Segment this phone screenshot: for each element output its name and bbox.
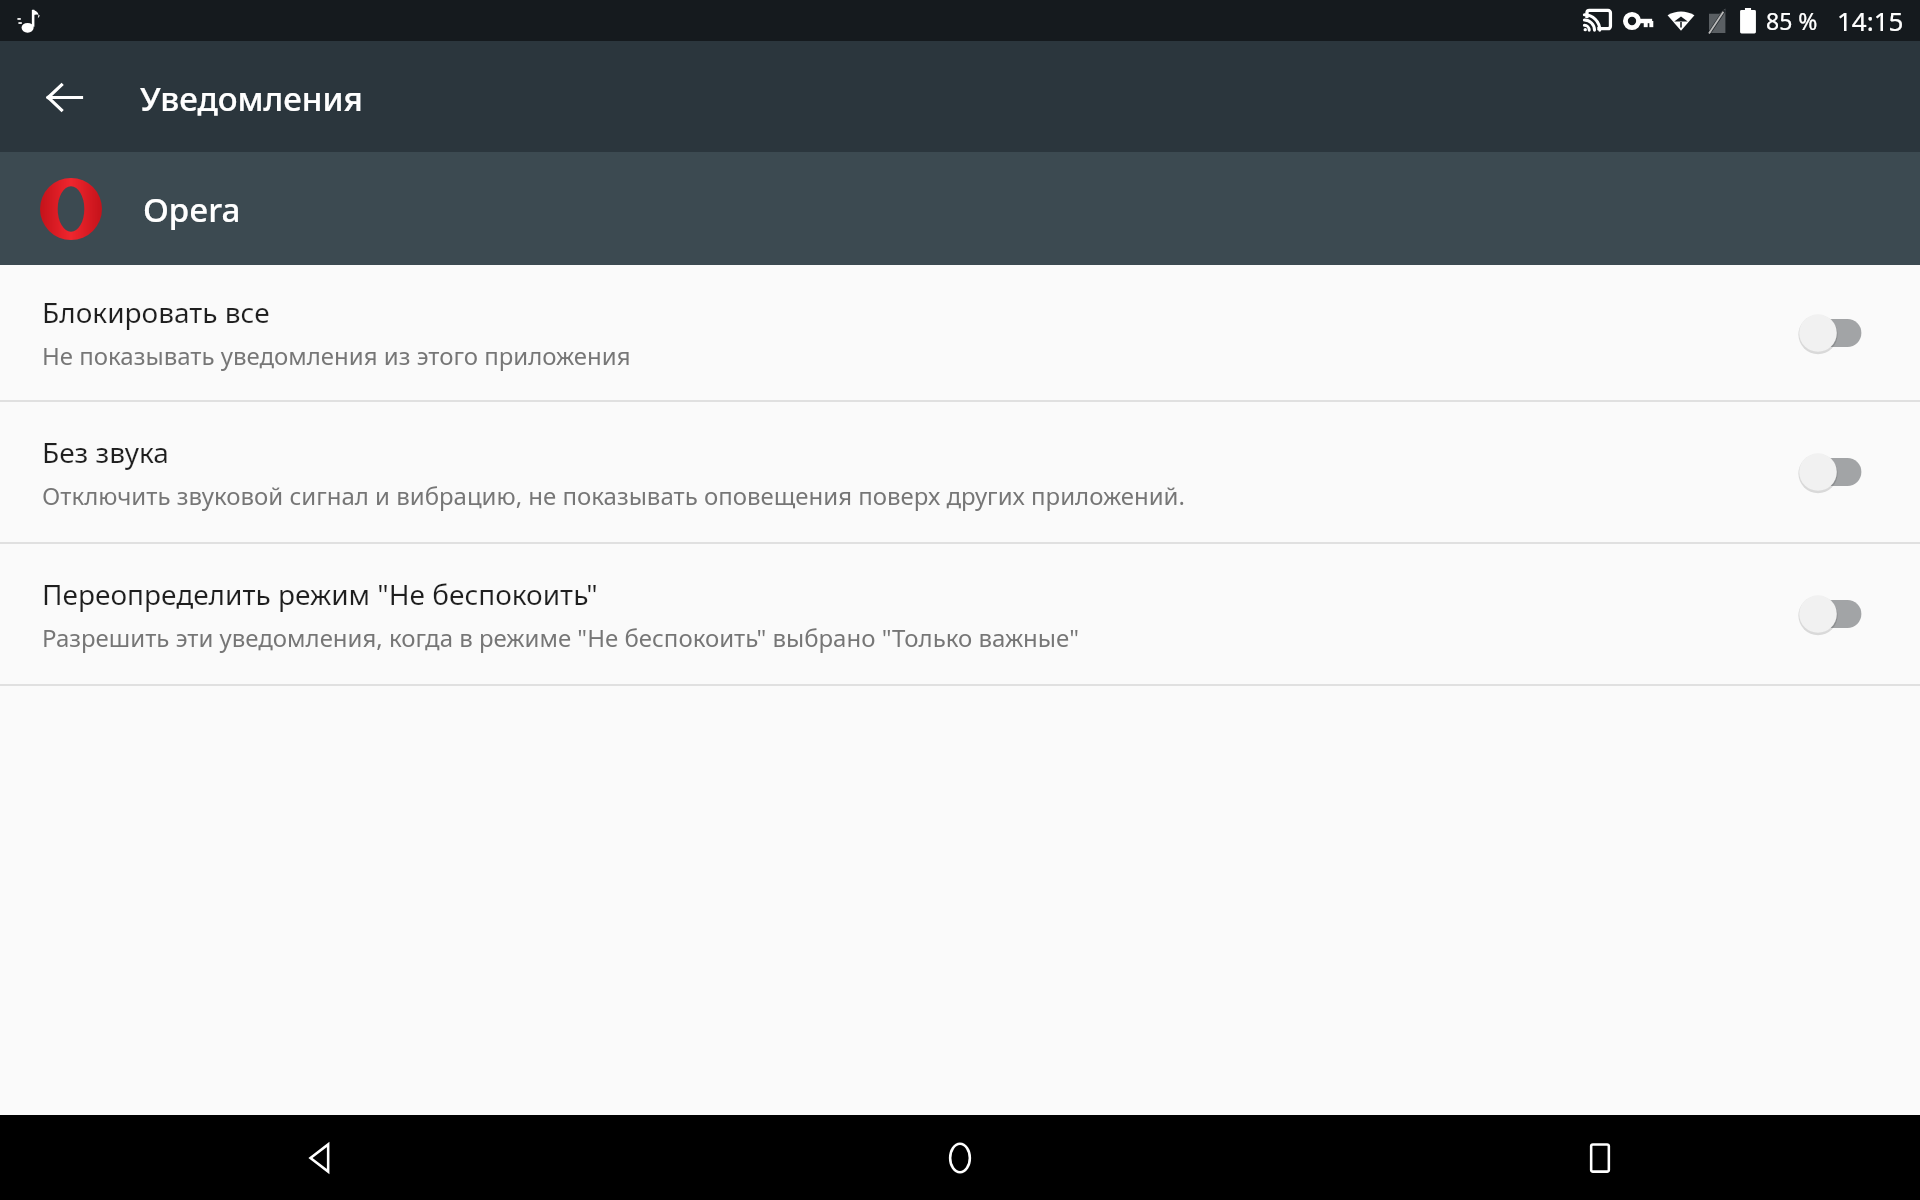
button[interactable]: Opera <box>0 152 1920 265</box>
staticText: Переопределить режим "Не беспокоить" <box>42 575 598 613</box>
staticText: Блокировать все <box>42 293 270 331</box>
staticText: Без звука <box>42 433 169 471</box>
staticText: Разрешить эти уведомления, когда в режим… <box>42 621 1080 654</box>
button[interactable]: Переопределить режим "Не беспокоить" <box>1798 578 1884 650</box>
staticText: Уведомления <box>140 76 363 121</box>
staticText: Отключить звуковой сигнал и вибрацию, не… <box>42 479 1185 512</box>
button[interactable]: Назад <box>0 1115 640 1200</box>
button[interactable]: Переопределить режим "Не беспокоить" <box>0 544 1920 684</box>
button[interactable]: Главный экран <box>640 1115 1280 1200</box>
button[interactable]: Обзор <box>1280 1115 1920 1200</box>
staticText: Opera <box>143 187 241 232</box>
staticText: 85 % <box>1766 5 1818 36</box>
button[interactable]: Назад <box>28 61 100 133</box>
staticText: Не показывать уведомления из этого прило… <box>42 339 631 372</box>
staticText: 14:15 <box>1837 3 1904 38</box>
button[interactable]: Блокировать все <box>1798 297 1884 369</box>
button[interactable]: Без звука <box>0 402 1920 542</box>
button[interactable]: Блокировать все <box>0 265 1920 400</box>
button[interactable]: Без звука <box>1798 436 1884 508</box>
